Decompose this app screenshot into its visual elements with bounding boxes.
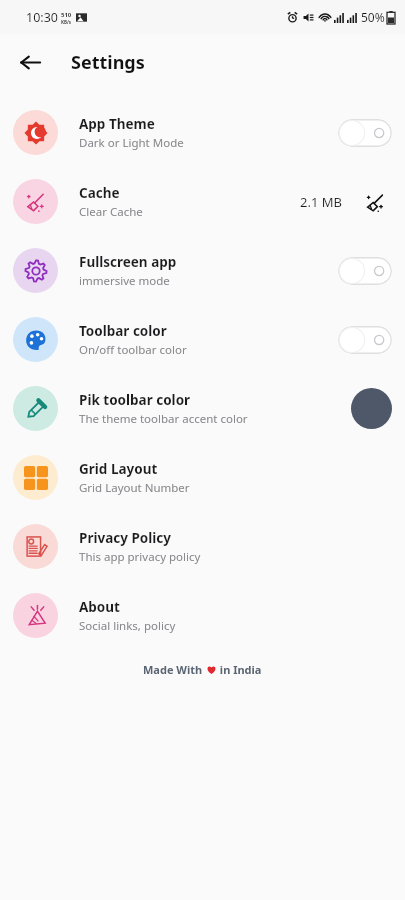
- staticText: Grid Layout: [79, 460, 158, 478]
- staticText: On/off toolbar color: [79, 342, 187, 358]
- staticText: Fullscreen app: [79, 253, 177, 271]
- button[interactable]: Pik toolbar color: [0, 374, 405, 443]
- staticText: Dark or Light Mode: [79, 135, 184, 151]
- staticText: KB/s: [61, 19, 72, 25]
- button[interactable]: Privacy Policy: [0, 512, 405, 581]
- button[interactable]: Clear cache: [358, 185, 392, 219]
- staticText: Grid Layout Number: [79, 480, 190, 496]
- staticText: 10:30: [26, 9, 58, 26]
- button[interactable]: Toggle: [338, 257, 392, 285]
- button[interactable]: Grid Layout: [0, 443, 405, 512]
- button[interactable]: App Theme: [0, 98, 405, 167]
- staticText: immersive mode: [79, 273, 170, 289]
- staticText: Clear Cache: [79, 204, 143, 220]
- staticText: The theme toolbar accent color: [79, 411, 248, 427]
- staticText: App Theme: [79, 115, 155, 133]
- button[interactable]: Back: [10, 42, 50, 82]
- staticText: Pik toolbar color: [79, 391, 191, 409]
- button[interactable]: Pick color: [351, 388, 392, 429]
- button[interactable]: Fullscreen app: [0, 236, 405, 305]
- staticText: About: [79, 598, 120, 616]
- staticText: in India: [217, 662, 262, 677]
- button[interactable]: Toolbar color: [0, 305, 405, 374]
- staticText: 510: [61, 11, 72, 19]
- staticText: Social links, policy: [79, 618, 176, 634]
- staticText: Cache: [79, 184, 120, 202]
- staticText: This app privacy policy: [79, 549, 201, 565]
- staticText: Settings: [71, 50, 145, 75]
- staticText: Privacy Policy: [79, 529, 171, 547]
- button[interactable]: Toggle: [338, 119, 392, 147]
- button[interactable]: Toggle: [338, 326, 392, 354]
- staticText: Made With: [143, 662, 206, 677]
- staticText: Toolbar color: [79, 322, 167, 340]
- staticText: 2.1 MB: [300, 193, 342, 211]
- button[interactable]: Cache: [0, 167, 405, 236]
- staticText: 50%: [361, 9, 385, 25]
- button[interactable]: About: [0, 581, 405, 650]
